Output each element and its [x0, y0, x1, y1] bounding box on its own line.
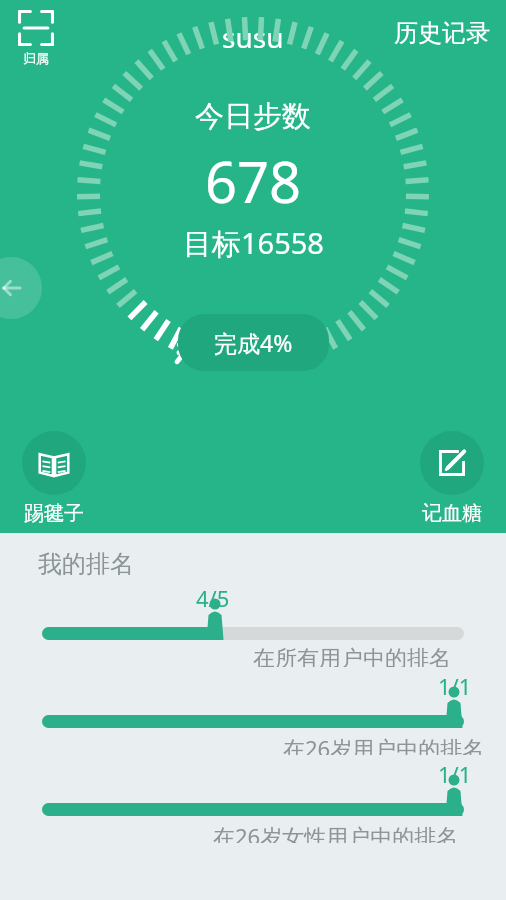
button[interactable]: 完成4% [178, 314, 329, 371]
button[interactable]: 1/1 [0, 667, 506, 755]
button[interactable]: 记血糖 [414, 425, 490, 532]
button[interactable]: 返回 [0, 257, 42, 319]
button[interactable]: 归属扫描 [12, 8, 60, 68]
staticText: 历史记录 [394, 18, 490, 48]
staticText: 目标16558 [183, 223, 324, 263]
staticText: 记血糖 [422, 501, 482, 526]
staticText: 踢毽子 [24, 501, 84, 526]
staticText: 678 [205, 143, 302, 219]
staticText: 1/1 [438, 759, 472, 789]
button[interactable]: 1/1 [0, 755, 506, 843]
staticText: 1/1 [438, 671, 472, 701]
staticText: 完成4% [214, 327, 293, 358]
staticText: 在所有用户中的排名 [253, 645, 451, 667]
staticText: 在26岁女性用户中的排名 [213, 821, 459, 843]
staticText: 在26岁用户中的排名 [283, 733, 485, 755]
staticText: 4/5 [196, 583, 230, 613]
button[interactable]: 历史记录 [382, 12, 502, 54]
staticText: 今日步数 [195, 98, 311, 135]
staticText: susu [222, 18, 284, 56]
button[interactable]: 4/5 [0, 579, 506, 667]
staticText: 我的排名 [38, 549, 134, 579]
staticText: 归属 [23, 50, 49, 66]
button[interactable]: 踢毽子 [16, 425, 92, 532]
